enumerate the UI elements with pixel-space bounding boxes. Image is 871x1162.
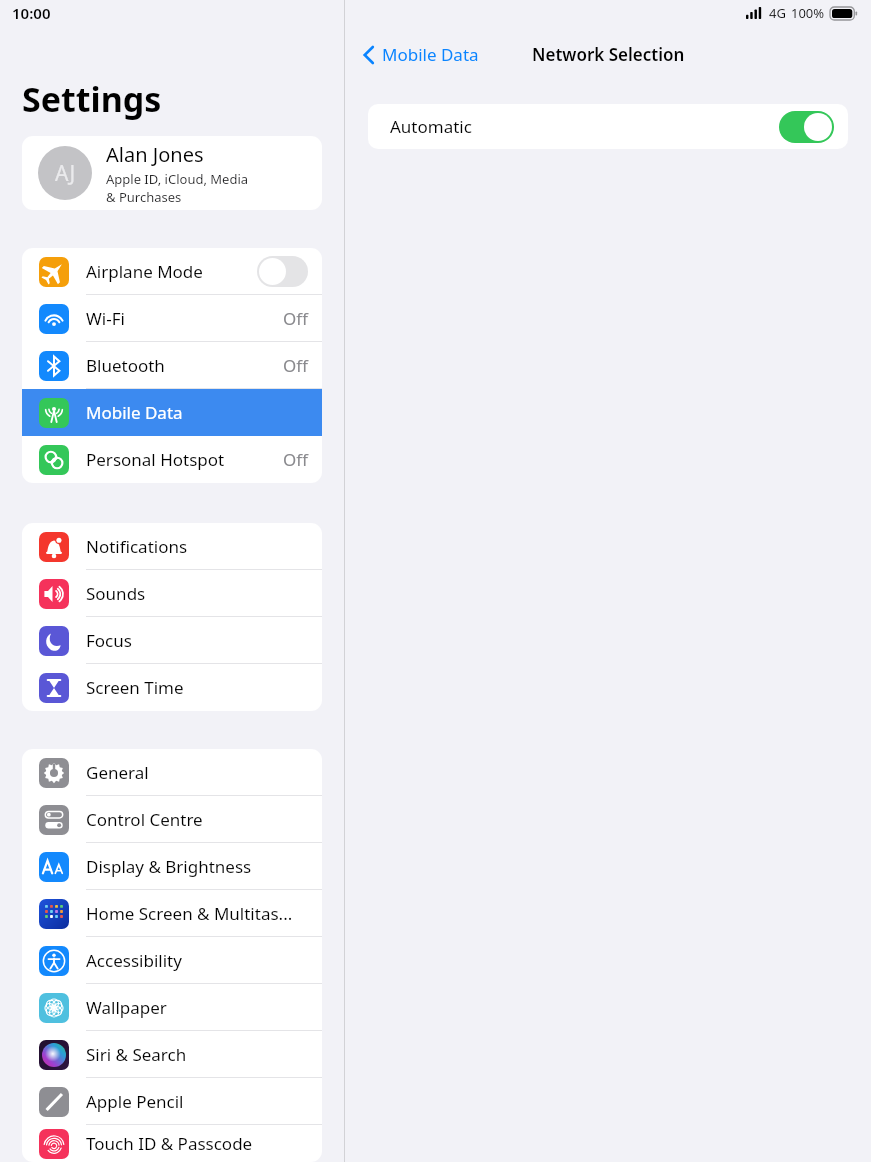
button[interactable]: Touch ID & Passcode bbox=[22, 1125, 322, 1162]
button[interactable]: Screen Time bbox=[22, 664, 322, 711]
staticText: & Purchases bbox=[106, 188, 182, 206]
staticText: 4G bbox=[769, 4, 786, 22]
button[interactable]: Notifications bbox=[22, 523, 322, 570]
button[interactable]: Home Screen & Multitas... bbox=[22, 890, 322, 937]
staticText: Off bbox=[283, 448, 308, 471]
staticText: Alan Jones bbox=[106, 141, 204, 168]
staticText: Personal Hotspot bbox=[86, 448, 283, 471]
button[interactable]: Wallpaper bbox=[22, 984, 322, 1031]
button[interactable]: Wi-Fi bbox=[22, 295, 322, 342]
staticText: Control Centre bbox=[86, 808, 308, 831]
button[interactable]: Siri & Search bbox=[22, 1031, 322, 1078]
staticText: Bluetooth bbox=[86, 354, 283, 377]
staticText: Accessibility bbox=[86, 949, 308, 972]
staticText: Automatic bbox=[390, 115, 779, 138]
button[interactable]: Sounds bbox=[22, 570, 322, 617]
button[interactable]: Automatic on bbox=[779, 111, 834, 143]
button[interactable]: AJ bbox=[22, 136, 322, 210]
button[interactable]: Accessibility bbox=[22, 937, 322, 984]
button[interactable]: Display & Brightness bbox=[22, 843, 322, 890]
staticText: Wi-Fi bbox=[86, 307, 283, 330]
button[interactable]: Personal Hotspot bbox=[22, 436, 322, 483]
button[interactable]: Apple Pencil bbox=[22, 1078, 322, 1125]
button[interactable]: Focus bbox=[22, 617, 322, 664]
staticText: Apple ID, iCloud, Media bbox=[106, 170, 249, 188]
staticText: Sounds bbox=[86, 582, 308, 605]
staticText: Mobile Data bbox=[382, 43, 479, 66]
button[interactable]: Automatic bbox=[368, 104, 848, 149]
button[interactable]: Airplane Mode bbox=[22, 248, 322, 295]
staticText: Mobile Data bbox=[86, 401, 308, 424]
staticText: 10:00 bbox=[12, 3, 51, 23]
staticText: AJ bbox=[55, 159, 76, 188]
staticText: Wallpaper bbox=[86, 996, 308, 1019]
staticText: Off bbox=[283, 307, 308, 330]
staticText: Screen Time bbox=[86, 676, 308, 699]
staticText: Settings bbox=[22, 76, 162, 122]
button[interactable]: Mobile Data bbox=[359, 37, 483, 72]
button[interactable]: Bluetooth bbox=[22, 342, 322, 389]
button[interactable]: Mobile Data bbox=[22, 389, 322, 436]
button[interactable]: Control Centre bbox=[22, 796, 322, 843]
button[interactable]: General bbox=[22, 749, 322, 796]
staticText: General bbox=[86, 761, 308, 784]
staticText: 100% bbox=[791, 4, 825, 22]
staticText: Siri & Search bbox=[86, 1043, 308, 1066]
staticText: Touch ID & Passcode bbox=[86, 1132, 308, 1155]
staticText: Airplane Mode bbox=[86, 260, 257, 283]
staticText: Network Selection bbox=[532, 43, 685, 66]
staticText: Off bbox=[283, 354, 308, 377]
staticText: Display & Brightness bbox=[86, 855, 308, 878]
staticText: Home Screen & Multitas... bbox=[86, 902, 308, 925]
staticText: Focus bbox=[86, 629, 308, 652]
staticText: Apple Pencil bbox=[86, 1090, 308, 1113]
staticText: Notifications bbox=[86, 535, 308, 558]
button[interactable]: Airplane Mode off bbox=[257, 256, 308, 287]
